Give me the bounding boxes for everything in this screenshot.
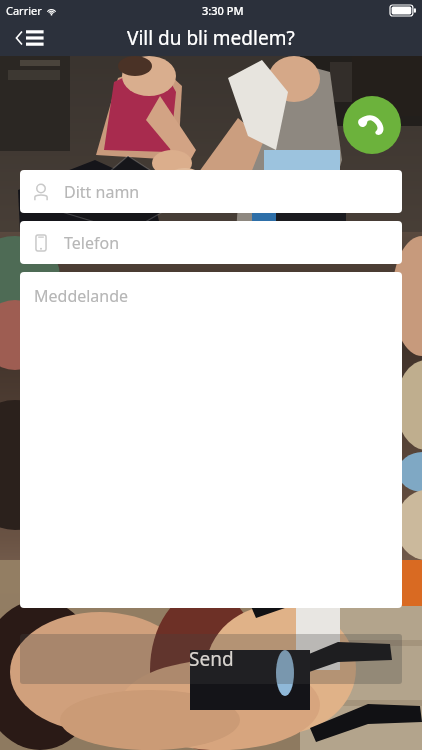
button[interactable]: Meddelande — [20, 272, 402, 608]
button[interactable]: Telefon — [20, 221, 402, 264]
staticText: Ditt namn — [64, 181, 140, 203]
button[interactable]: Menu — [10, 21, 58, 55]
button[interactable]: Send — [20, 634, 402, 684]
staticText: Meddelande — [34, 285, 129, 307]
staticText: 3:30 PM — [202, 3, 244, 18]
staticText: Vill du bli medlem? — [127, 25, 295, 51]
staticText: Send — [189, 646, 234, 672]
button[interactable]: Call — [343, 96, 401, 154]
staticText: Telefon — [64, 232, 120, 254]
staticText: Carrier — [6, 3, 42, 18]
button[interactable]: Ditt namn — [20, 170, 402, 213]
